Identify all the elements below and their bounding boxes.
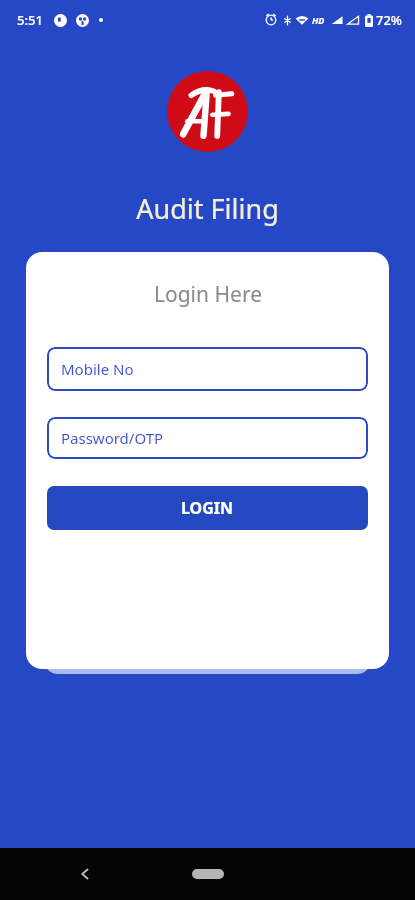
button[interactable]: LOGIN xyxy=(47,486,368,530)
staticText: HD xyxy=(312,14,325,26)
staticText: Mobile No xyxy=(61,359,134,379)
staticText: 5:51 xyxy=(17,11,43,29)
button[interactable]: Back xyxy=(65,854,105,894)
staticText: LOGIN xyxy=(181,497,234,519)
staticText: Password/OTP xyxy=(61,428,164,448)
staticText: Audit Filing xyxy=(136,190,279,227)
button[interactable]: Password/OTP xyxy=(47,417,368,459)
button[interactable]: Home xyxy=(182,859,234,889)
staticText: Login Here xyxy=(154,280,262,309)
button[interactable]: Mobile No xyxy=(47,347,368,391)
staticText: 72% xyxy=(376,11,402,29)
